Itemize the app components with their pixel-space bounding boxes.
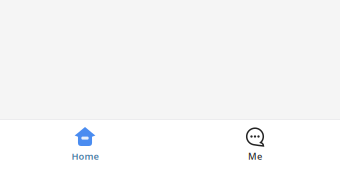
button[interactable]: Me xyxy=(170,120,340,191)
button[interactable]: Home xyxy=(0,120,170,191)
staticText: Home xyxy=(71,150,98,162)
staticText: Me xyxy=(248,150,262,162)
